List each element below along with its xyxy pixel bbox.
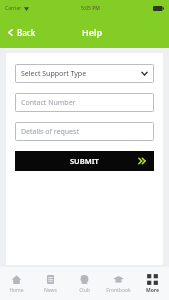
- staticText: Select Support Type: [21, 69, 87, 79]
- button[interactable]: SUBMIT: [15, 151, 154, 171]
- staticText: Details of request: [21, 127, 79, 137]
- button[interactable]: Club: [67, 267, 101, 300]
- staticText: Home: [9, 287, 24, 294]
- staticText: Frontbook: [106, 287, 131, 294]
- staticText: Help: [82, 26, 103, 38]
- staticText: More: [146, 287, 159, 294]
- staticText: 5:05 PM: [81, 5, 100, 12]
- button[interactable]: Home: [0, 267, 33, 300]
- staticText: Club: [79, 287, 90, 294]
- staticText: Back: [17, 27, 36, 38]
- staticText: Carrier: [5, 5, 22, 12]
- button[interactable]: Details of request: [15, 122, 154, 141]
- button[interactable]: Contact Number: [15, 93, 154, 112]
- button[interactable]: Back: [0, 23, 44, 42]
- button[interactable]: More: [135, 267, 169, 300]
- button[interactable]: Frontbook: [101, 267, 135, 300]
- staticText: Contact Number: [21, 98, 76, 108]
- staticText: News: [44, 287, 57, 294]
- button[interactable]: News: [33, 267, 67, 300]
- button[interactable]: Select Support Type: [15, 64, 154, 83]
- staticText: SUBMIT: [70, 156, 99, 166]
